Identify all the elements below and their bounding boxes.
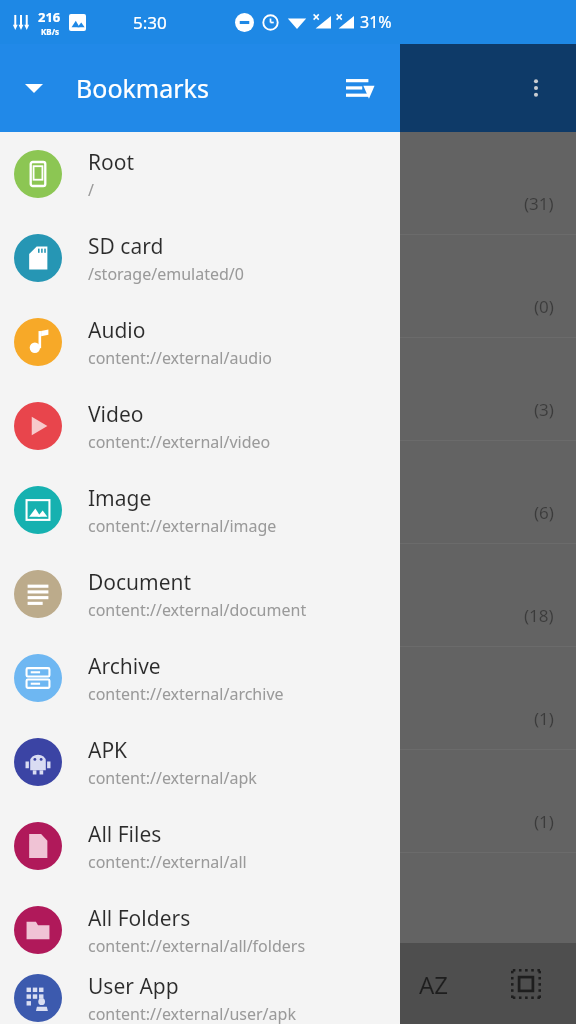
staticText: Video [88, 400, 144, 429]
staticText: KB/s [41, 26, 59, 37]
staticText: content://external/all/folders [88, 935, 306, 957]
staticText: content://external/apk [88, 767, 257, 789]
staticText: content://external/user/apk [88, 1003, 296, 1024]
staticText: Document [88, 568, 192, 597]
staticText: (3) [534, 398, 554, 421]
staticText: (6) [534, 501, 554, 524]
staticText: Image [88, 484, 152, 513]
button[interactable]: (18) [0, 544, 576, 646]
button[interactable]: All Folders [0, 888, 400, 972]
staticText: content://external/document [88, 599, 307, 621]
staticText: All Files [88, 820, 162, 849]
button[interactable]: (0) [0, 235, 576, 337]
button[interactable]: (1) [0, 647, 576, 749]
staticText: (0) [534, 295, 554, 318]
button[interactable]: Document [0, 552, 400, 636]
button[interactable]: More options [512, 64, 560, 112]
staticText: User App [88, 972, 179, 1001]
button[interactable]: (3) [0, 338, 576, 440]
staticText: AZ [419, 968, 449, 1001]
button[interactable]: AZ [402, 952, 466, 1016]
button[interactable]: Video [0, 384, 400, 468]
button[interactable]: Bookmarks [0, 44, 400, 132]
staticText: (18) [524, 604, 554, 627]
staticText: (1) [534, 707, 554, 730]
button[interactable]: User App [0, 972, 400, 1024]
staticText: content://external/audio [88, 347, 272, 369]
staticText: Bookmarks [76, 71, 209, 105]
staticText: SD card [88, 232, 164, 261]
staticText: APK [88, 736, 128, 765]
button[interactable]: Root [0, 132, 400, 216]
staticText: content://external/video [88, 431, 271, 453]
staticText: /storage/emulated/0 [88, 263, 244, 285]
staticText: 31% [360, 11, 392, 33]
staticText: 216 [38, 8, 61, 26]
staticText: content://external/all [88, 851, 247, 873]
staticText: 5:30 [133, 11, 167, 34]
staticText: Audio [88, 316, 146, 345]
button[interactable]: APK [0, 720, 400, 804]
button[interactable]: Select all [494, 952, 558, 1016]
staticText: Root [88, 148, 135, 177]
button[interactable]: (31) [0, 132, 576, 234]
button[interactable]: (6) [0, 441, 576, 543]
staticText: Archive [88, 652, 161, 681]
button[interactable]: Image [0, 468, 400, 552]
staticText: content://external/image [88, 515, 277, 537]
button[interactable]: SD card [0, 216, 400, 300]
staticText: content://external/archive [88, 683, 284, 705]
button[interactable]: (1) [0, 750, 576, 852]
staticText: / [88, 179, 94, 201]
button[interactable]: Archive [0, 636, 400, 720]
staticText: (31) [524, 192, 554, 215]
staticText: All Folders [88, 904, 191, 933]
button[interactable]: All Files [0, 804, 400, 888]
staticText: (1) [534, 810, 554, 833]
button[interactable]: Sort [332, 60, 388, 116]
button[interactable]: Audio [0, 300, 400, 384]
